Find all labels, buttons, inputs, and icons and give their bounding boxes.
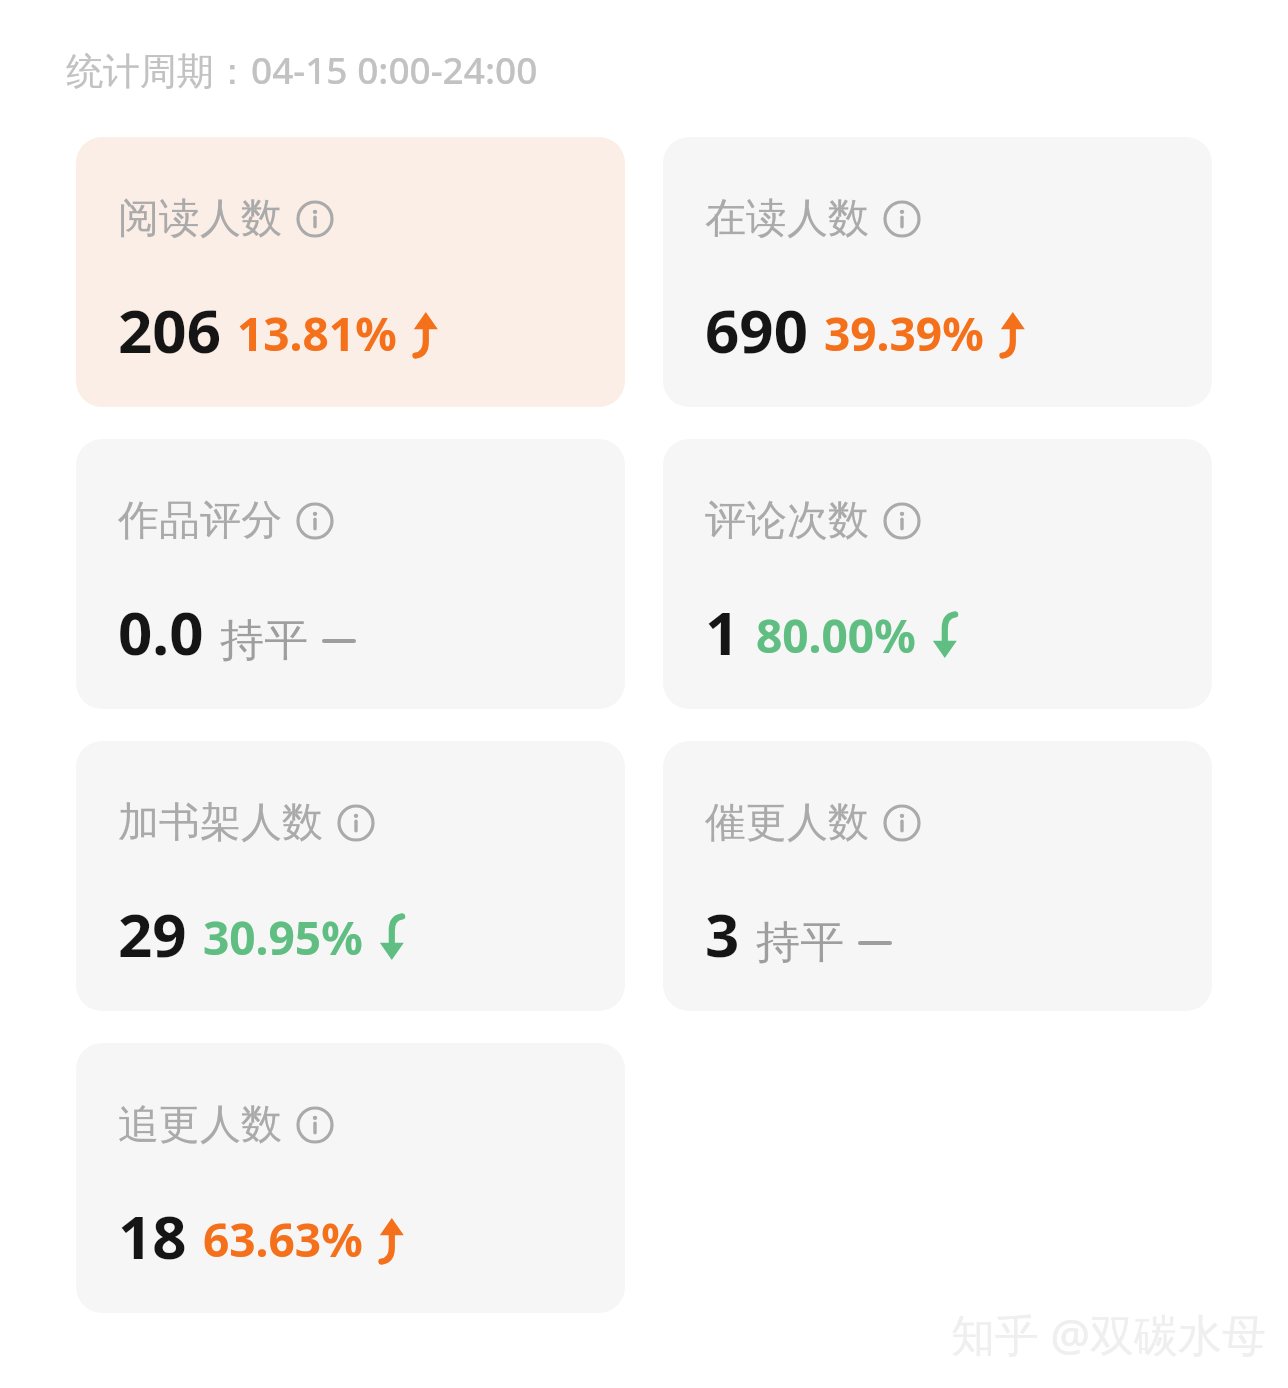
button[interactable]: 催更人数	[663, 741, 1212, 1011]
staticText: 30.95%	[203, 906, 363, 969]
button[interactable]: 追更人数	[76, 1043, 625, 1313]
staticText: 29	[118, 893, 187, 975]
staticText: 206	[118, 289, 221, 371]
button[interactable]: 说明	[883, 502, 921, 540]
staticText: 39.39%	[824, 302, 984, 365]
staticText: 18	[118, 1195, 187, 1277]
staticText: 3	[705, 893, 740, 975]
staticText: 加书架人数	[118, 797, 323, 849]
button[interactable]: 说明	[296, 200, 334, 238]
staticText: 80.00%	[756, 604, 916, 667]
button[interactable]: 加书架人数	[76, 741, 625, 1011]
button[interactable]: 阅读人数	[76, 137, 625, 407]
staticText: 1	[705, 591, 740, 673]
staticText: 持平	[220, 613, 308, 668]
staticText: 作品评分	[118, 495, 282, 547]
button[interactable]: 说明	[296, 502, 334, 540]
button[interactable]: 说明	[883, 804, 921, 842]
staticText: 催更人数	[705, 797, 869, 849]
button[interactable]: 作品评分	[76, 439, 625, 709]
button[interactable]: 说明	[296, 1106, 334, 1144]
button[interactable]: 说明	[337, 804, 375, 842]
staticText: 在读人数	[705, 193, 869, 245]
staticText: 13.81%	[237, 302, 397, 365]
staticText: 持平	[756, 915, 844, 970]
staticText: 追更人数	[118, 1099, 282, 1151]
button[interactable]: 评论次数	[663, 439, 1212, 709]
staticText: 阅读人数	[118, 193, 282, 245]
button[interactable]: 在读人数	[663, 137, 1212, 407]
staticText: 0.0	[118, 591, 204, 673]
button[interactable]: 说明	[883, 200, 921, 238]
staticText: 评论次数	[705, 495, 869, 547]
staticText: 统计周期：04-15 0:00-24:00	[66, 44, 538, 95]
staticText: 690	[705, 289, 808, 371]
staticText: 知乎 @双碳水母	[951, 1304, 1266, 1364]
staticText: 63.63%	[203, 1208, 363, 1271]
